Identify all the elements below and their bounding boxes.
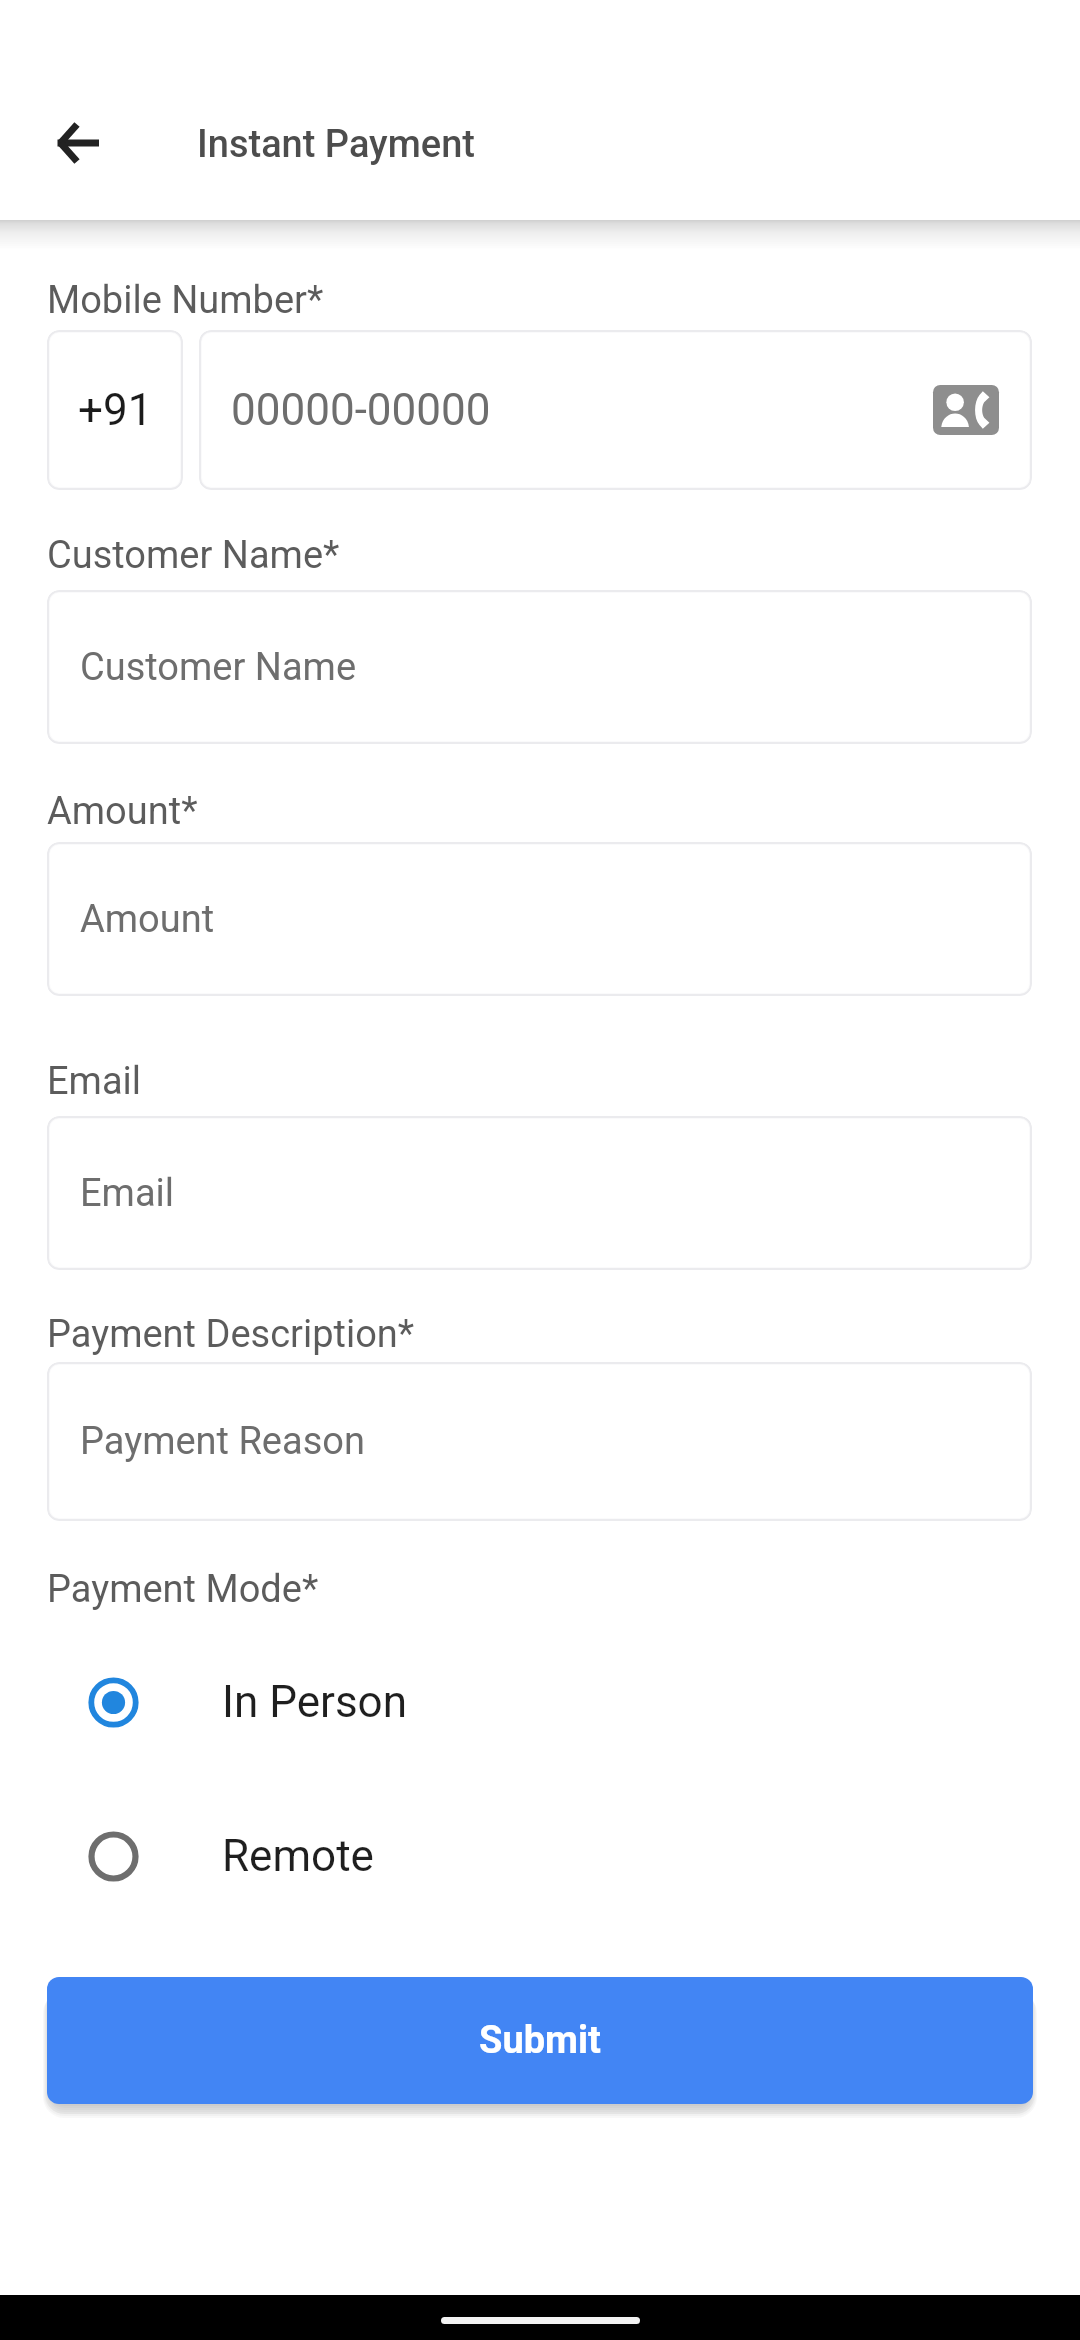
staticText: In Person [222,1676,408,1728]
staticText: Payment Reason [80,1419,365,1464]
staticText: Payment Description* [47,1312,415,1357]
staticText: Amount* [47,789,198,834]
staticText: +91 [78,384,153,436]
staticText: Mobile Number* [47,278,324,323]
button[interactable]: 00000-00000 [199,330,1032,490]
staticText: 00000-00000 [231,384,491,436]
button[interactable]: Back [29,95,125,191]
button[interactable]: Payment Reason [47,1362,1032,1521]
staticText: Email [80,1171,175,1216]
staticText: Instant Payment [197,122,475,167]
button[interactable]: Amount [47,842,1032,996]
staticText: Submit [479,2018,601,2063]
button[interactable]: Pick contact [924,368,1008,452]
button[interactable]: In Person [47,1655,1032,1749]
staticText: Email [47,1059,142,1104]
button[interactable]: Customer Name [47,590,1032,744]
button[interactable]: +91 [47,330,183,490]
staticText: Amount [80,897,215,942]
button[interactable]: Email [47,1116,1032,1270]
staticText: Remote [222,1830,374,1882]
button[interactable]: Remote [47,1809,1032,1903]
staticText: Customer Name* [47,533,340,578]
staticText: Customer Name [80,645,357,690]
staticText: Payment Mode* [47,1567,319,1612]
button[interactable]: Submit [47,1977,1033,2104]
